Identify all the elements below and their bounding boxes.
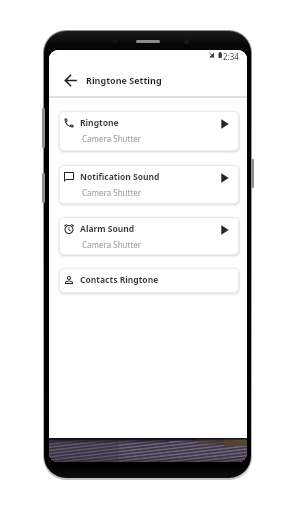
button[interactable]	[60, 70, 80, 90]
button[interactable]	[211, 219, 229, 237]
staticText: Contacts Ringtone	[80, 274, 159, 286]
button[interactable]: Ringtone	[59, 111, 239, 151]
staticText: 2:34	[223, 51, 239, 62]
button[interactable]: Contacts Ringtone	[59, 268, 239, 293]
staticText: Camera Shutter	[82, 239, 142, 250]
button[interactable]	[211, 113, 229, 131]
staticText: Ringtone Setting	[86, 74, 162, 86]
staticText: Notification Sound	[80, 171, 160, 183]
button[interactable]: Alarm Sound	[59, 217, 239, 255]
button[interactable]: Notification Sound	[59, 165, 239, 204]
staticText: Ringtone	[80, 117, 119, 129]
staticText: Alarm Sound	[80, 223, 135, 235]
staticText: Camera Shutter	[82, 133, 142, 144]
button[interactable]	[211, 167, 229, 185]
staticText: Camera Shutter	[82, 187, 142, 198]
